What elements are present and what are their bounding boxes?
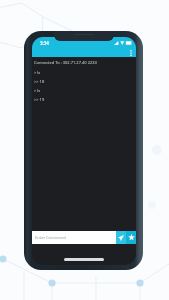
button[interactable]: Send <box>116 231 126 244</box>
staticText: Enter Command <box>35 235 66 240</box>
staticText: Connected To : 302.71.27.40 2233 <box>34 60 97 65</box>
staticText: >> 18 <box>34 79 45 84</box>
staticText: 3:34 <box>40 40 49 46</box>
staticText: >> 19 <box>34 97 45 102</box>
button[interactable]: Favorite <box>126 231 136 244</box>
button[interactable]: Enter Command <box>35 231 116 244</box>
staticText: > ls <box>34 70 41 75</box>
staticText: > ls <box>34 88 41 93</box>
button[interactable]: More options <box>125 48 136 57</box>
